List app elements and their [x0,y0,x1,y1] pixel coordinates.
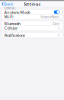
staticText: Notifications [4,32,25,38]
staticText: On [52,21,57,26]
staticText: Airplane Mode [4,9,30,15]
staticText: GENERAL [4,6,15,10]
button[interactable]: Back [0,1,13,6]
button[interactable]: Cellular [2,26,62,30]
button[interactable]: Wi-Fi [2,15,62,19]
staticText: Bluetooth [4,21,20,26]
staticText: Back [4,1,13,6]
button[interactable]: Notifications [2,33,62,37]
staticText: Cellular [4,25,18,31]
staticText: Wi-Fi [4,14,13,19]
button[interactable]: Airplane Mode [2,10,62,14]
staticText: Settings [23,1,40,6]
button[interactable]: Bluetooth [2,21,62,26]
staticText: HomeNet [40,14,57,19]
